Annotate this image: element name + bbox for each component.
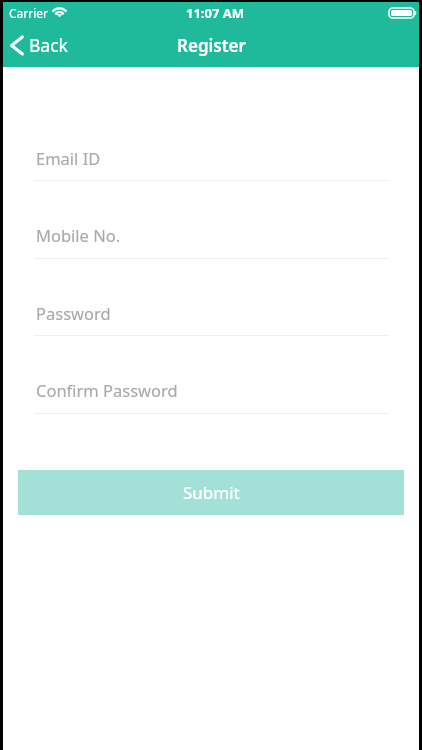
button[interactable]: Submit [18, 470, 404, 515]
button[interactable]: Confirm Password [34, 368, 392, 414]
staticText: Password [36, 302, 111, 324]
staticText: Carrier [9, 5, 49, 21]
button[interactable]: Back [3, 24, 78, 66]
staticText: Register [177, 34, 246, 57]
staticText: 11:07 AM [186, 4, 245, 22]
staticText: Email ID [36, 147, 101, 169]
button[interactable]: Password [34, 291, 392, 336]
staticText: Confirm Password [36, 379, 178, 401]
staticText: Back [29, 33, 68, 57]
staticText: Submit [183, 481, 240, 504]
button[interactable]: Mobile No. [34, 213, 392, 259]
staticText: Mobile No. [36, 224, 121, 246]
button[interactable]: Email ID [34, 136, 392, 181]
